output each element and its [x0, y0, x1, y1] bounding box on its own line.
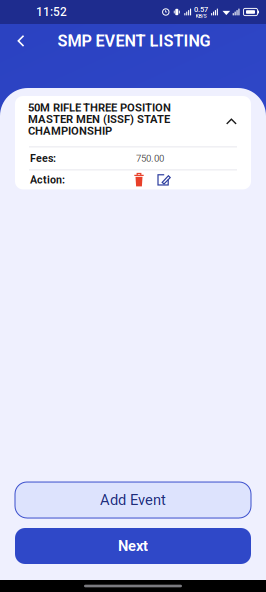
staticText: Next: [118, 537, 148, 555]
button[interactable]: Next: [15, 528, 251, 564]
button[interactable]: Back: [5, 26, 37, 56]
staticText: 11:52: [36, 5, 67, 19]
staticText: SMP EVENT LISTING: [57, 31, 210, 51]
staticText: 750.00: [136, 153, 164, 164]
staticText: 50M RIFLE THREE POSITION MASTER MEN (ISS…: [28, 101, 171, 137]
staticText: 0.57: [194, 5, 208, 14]
staticText: Add Event: [100, 491, 166, 509]
button[interactable]: Add Event: [15, 482, 251, 518]
button[interactable]: Edit: [157, 173, 171, 186]
staticText: KB/S: [196, 13, 207, 19]
button[interactable]: Delete: [134, 172, 144, 187]
staticText: Action:: [30, 174, 65, 186]
staticText: Fees:: [30, 152, 56, 165]
